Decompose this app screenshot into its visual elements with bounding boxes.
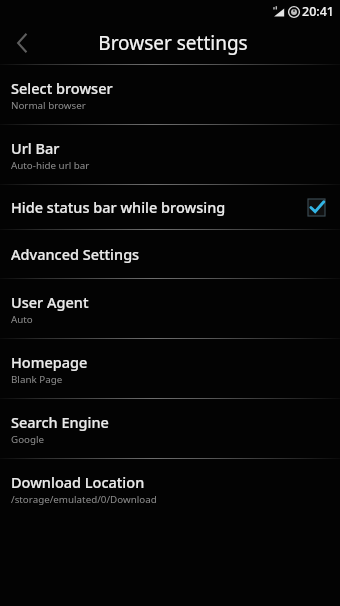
button[interactable]: Select browser xyxy=(0,65,340,124)
staticText: Search Engine xyxy=(11,412,109,432)
staticText: Auto-hide url bar xyxy=(11,159,90,172)
staticText: Advanced Settings xyxy=(11,244,140,264)
staticText: Normal browser xyxy=(11,99,86,112)
staticText: Browser settings xyxy=(98,30,248,56)
button[interactable]: Back xyxy=(0,22,44,64)
staticText: /storage/emulated/0/Download xyxy=(11,493,157,506)
button[interactable]: Url Bar xyxy=(0,125,340,184)
button[interactable]: User Agent xyxy=(0,279,340,338)
button[interactable]: Hide status bar while browsing xyxy=(0,185,340,229)
button[interactable]: Advanced Settings xyxy=(0,230,340,278)
staticText: 20:41 xyxy=(302,3,335,20)
staticText: Blank Page xyxy=(11,373,63,386)
staticText: Url Bar xyxy=(11,138,60,158)
staticText: Google xyxy=(11,433,45,446)
button[interactable]: Download Location xyxy=(0,459,340,518)
staticText: Select browser xyxy=(11,78,113,98)
staticText: Hide status bar while browsing xyxy=(11,197,226,217)
staticText: User Agent xyxy=(11,292,89,312)
button[interactable]: Hide status bar while browsing toggle xyxy=(303,194,329,220)
button[interactable]: Search Engine xyxy=(0,399,340,458)
staticText: Auto xyxy=(11,313,33,326)
staticText: Download Location xyxy=(11,472,145,492)
button[interactable]: Homepage xyxy=(0,339,340,398)
staticText: Homepage xyxy=(11,352,88,372)
